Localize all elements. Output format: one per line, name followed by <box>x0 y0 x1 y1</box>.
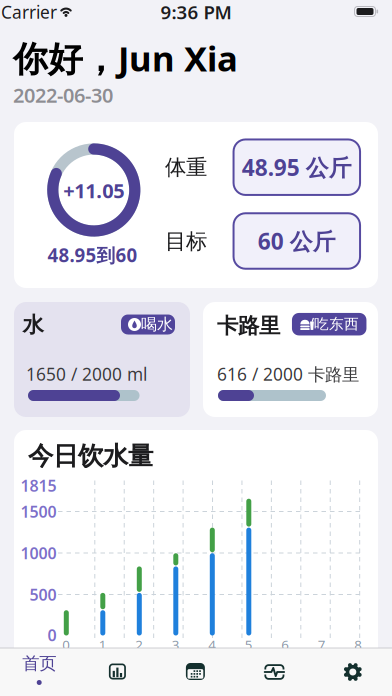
staticText: 0 <box>47 624 56 646</box>
staticText: 2022-06-30 <box>13 82 113 108</box>
button[interactable]: 首页 <box>0 648 78 696</box>
staticText: 1000 <box>20 542 56 564</box>
staticText: 0 <box>62 636 70 653</box>
staticText: 3 <box>172 636 180 653</box>
staticText: 9:36 PM <box>160 0 231 24</box>
staticText: 1 <box>99 636 107 653</box>
staticText: 2 <box>135 636 143 653</box>
staticText: 60 公斤 <box>258 226 336 256</box>
button[interactable]: 活动 <box>235 648 313 696</box>
staticText: 1500 <box>20 501 56 522</box>
staticText: 体重 <box>165 154 207 181</box>
button[interactable]: 48.95 公斤 <box>233 138 361 196</box>
staticText: 首页 <box>22 653 56 674</box>
button[interactable]: 统计 <box>79 648 157 696</box>
staticText: 1815 <box>20 475 56 496</box>
staticText: 5 <box>245 636 253 653</box>
button[interactable]: 喝水 <box>121 314 175 334</box>
staticText: 目标 <box>165 228 207 254</box>
staticText: 吃东西 <box>314 315 359 333</box>
staticText: +11.05 <box>63 177 124 204</box>
staticText: 喝水 <box>141 315 173 334</box>
staticText: 500 <box>29 584 56 605</box>
staticText: 1650 / 2000 ml <box>26 362 147 385</box>
staticText: 4 <box>208 636 216 653</box>
staticText: 7 <box>318 636 326 653</box>
staticText: 卡路里 <box>217 313 280 339</box>
staticText: 48.95到60 <box>47 243 137 267</box>
staticText: 你好，Jun Xia <box>13 35 238 81</box>
staticText: 6 <box>281 636 289 653</box>
button[interactable]: 设置 <box>314 648 392 696</box>
button[interactable]: 60 公斤 <box>233 212 361 270</box>
staticText: Carrier <box>1 0 57 23</box>
staticText: 8 <box>354 636 362 653</box>
staticText: 616 / 2000 卡路里 <box>217 362 359 385</box>
staticText: 今日饮水量 <box>28 440 153 471</box>
staticText: 水 <box>22 312 43 338</box>
button[interactable]: 日历 <box>157 648 235 696</box>
staticText: 48.95 公斤 <box>242 152 352 182</box>
button[interactable]: 吃东西 <box>292 313 366 335</box>
